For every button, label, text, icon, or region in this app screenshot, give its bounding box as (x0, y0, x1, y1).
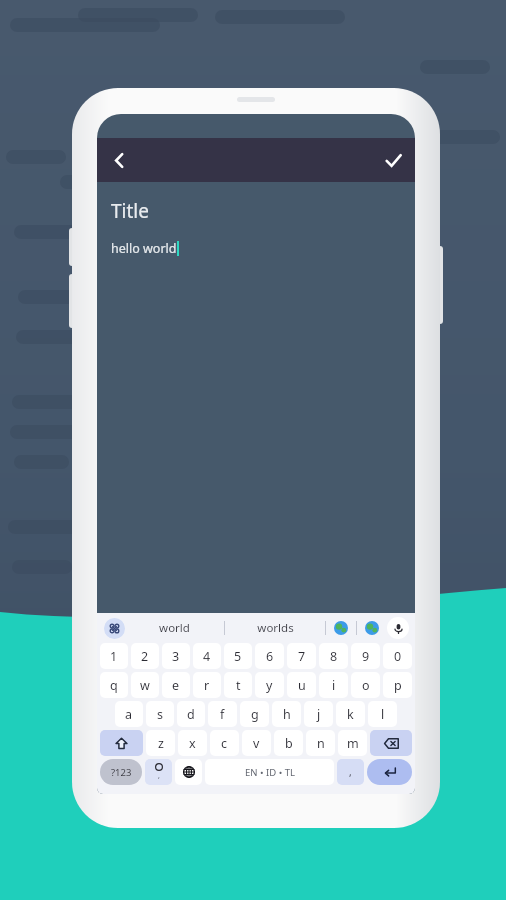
button[interactable]: a (115, 701, 143, 727)
staticText: j (317, 706, 321, 723)
button[interactable]: 1 (100, 643, 128, 669)
button[interactable]: r (193, 672, 221, 698)
staticText: h (283, 706, 291, 723)
button[interactable]: Enter (367, 759, 412, 785)
staticText: l (381, 706, 385, 723)
staticText: c (221, 735, 228, 752)
staticText: 2 (141, 648, 149, 665)
staticText: z (158, 735, 164, 752)
staticText: 8 (330, 648, 338, 665)
button[interactable]: EN • ID • TL (205, 759, 334, 785)
button[interactable]: w (131, 672, 159, 698)
button[interactable]: Back (97, 138, 141, 182)
button[interactable]: Voice input (387, 617, 409, 639)
button[interactable]: 6 (255, 643, 284, 669)
button[interactable]: 8 (319, 643, 348, 669)
staticText: 4 (203, 648, 211, 665)
button[interactable]: 3 (162, 643, 190, 669)
button[interactable]: Backspace (370, 730, 412, 756)
button[interactable]: 9 (351, 643, 380, 669)
button[interactable]: l (368, 701, 397, 727)
staticText: 1 (110, 648, 118, 665)
button[interactable]: v (242, 730, 271, 756)
staticText: r (204, 677, 210, 694)
staticText: world (159, 620, 190, 636)
button[interactable]: i (319, 672, 348, 698)
button[interactable]: m (338, 730, 367, 756)
button[interactable]: f (208, 701, 237, 727)
staticText: m (347, 735, 359, 752)
button[interactable]: h (272, 701, 301, 727)
staticText: w (140, 677, 150, 694)
button[interactable]: Title (97, 182, 415, 613)
button[interactable]: j (304, 701, 333, 727)
button[interactable]: k (336, 701, 365, 727)
staticText: i (332, 677, 336, 694)
button[interactable]: Change language (175, 759, 202, 785)
staticText: 9 (362, 648, 370, 665)
staticText: q (110, 677, 118, 694)
button[interactable]: d (177, 701, 205, 727)
staticText: f (220, 706, 225, 723)
button[interactable]: Emoji (145, 759, 172, 785)
staticText: a (125, 706, 133, 723)
staticText: EN • ID • TL (245, 766, 295, 779)
button[interactable]: x (178, 730, 207, 756)
button[interactable]: u (287, 672, 316, 698)
button[interactable]: 5 (224, 643, 252, 669)
staticText: p (394, 677, 402, 694)
staticText: v (253, 735, 260, 752)
staticText: 0 (394, 648, 402, 665)
staticText: hello world (111, 240, 177, 257)
button[interactable]: z (146, 730, 175, 756)
button[interactable]: s (146, 701, 174, 727)
button[interactable]: e (162, 672, 190, 698)
button[interactable]: , (337, 759, 364, 785)
staticText: , (349, 765, 352, 779)
button[interactable]: b (274, 730, 303, 756)
staticText: t (236, 677, 241, 694)
staticText: 6 (266, 648, 274, 665)
staticText: ?123 (111, 766, 132, 779)
staticText: x (189, 735, 196, 752)
staticText: Title (111, 198, 149, 224)
button[interactable]: Shift (100, 730, 143, 756)
staticText: g (251, 706, 259, 723)
button[interactable]: Save note (371, 138, 415, 182)
button[interactable]: 2 (131, 643, 159, 669)
button[interactable]: Keyboard options (104, 618, 125, 639)
staticText: 5 (234, 648, 242, 665)
button[interactable]: ?123 (100, 759, 142, 785)
button[interactable]: y (255, 672, 284, 698)
button[interactable]: n (306, 730, 335, 756)
button[interactable]: p (383, 672, 412, 698)
staticText: worlds (257, 620, 294, 636)
staticText: k (347, 706, 354, 723)
staticText: o (362, 677, 370, 694)
staticText: b (285, 735, 293, 752)
staticText: n (317, 735, 325, 752)
button[interactable]: Emoji globe (326, 621, 356, 635)
staticText: s (157, 706, 163, 723)
staticText: d (187, 706, 195, 723)
staticText: e (172, 677, 180, 694)
button[interactable]: 0 (383, 643, 412, 669)
button[interactable]: 7 (287, 643, 316, 669)
button[interactable]: Emoji globe two (357, 621, 387, 635)
button[interactable]: g (240, 701, 269, 727)
button[interactable]: c (210, 730, 239, 756)
staticText: 7 (298, 648, 306, 665)
staticText: , (158, 771, 160, 781)
button[interactable]: o (351, 672, 380, 698)
button[interactable]: 4 (193, 643, 221, 669)
staticText: 3 (172, 648, 180, 665)
staticText: y (266, 677, 273, 694)
button[interactable]: t (224, 672, 252, 698)
button[interactable]: worlds (225, 620, 325, 636)
button[interactable]: world (125, 620, 224, 636)
button[interactable]: q (100, 672, 128, 698)
staticText: u (298, 677, 306, 694)
